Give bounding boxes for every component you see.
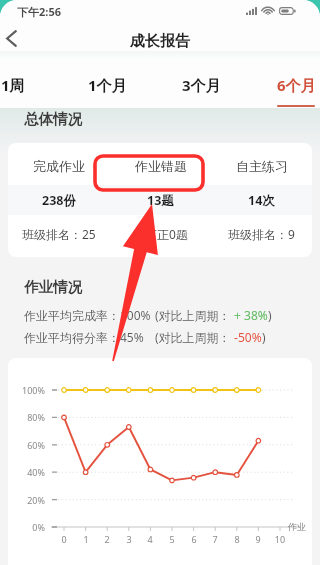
staticText: ) (262, 329, 266, 345)
button[interactable]: 6个月 (266, 75, 320, 105)
staticText: 完成作业 (33, 158, 85, 174)
staticText: (对比上周期： (155, 329, 231, 345)
button[interactable]: 3个月 (171, 75, 231, 105)
staticText: 7 (205, 533, 225, 545)
staticText: 班级排名：9 (228, 226, 295, 242)
staticText: 作业错题 (135, 158, 187, 174)
staticText: 作业平均完成率：100% (24, 307, 151, 323)
staticText: 80% (8, 411, 45, 423)
staticText: 2 (97, 533, 117, 545)
staticText: -50% (231, 329, 262, 345)
staticText: 0% (8, 521, 45, 533)
staticText: 作业 (288, 521, 306, 532)
staticText: 60% (8, 439, 45, 451)
staticText: 3个月 (182, 75, 221, 95)
staticText: 13题 (147, 192, 174, 209)
staticText: 班级排名：25 (22, 226, 96, 242)
staticText: 作业平均得分率：45% (24, 329, 144, 345)
staticText: 总体情况 (24, 110, 82, 128)
staticText: 自主练习 (236, 158, 288, 174)
staticText: 238份 (42, 192, 76, 209)
staticText: ) (268, 307, 272, 323)
staticText: 1 (76, 533, 96, 545)
staticText: 14次 (248, 192, 275, 209)
staticText: 0 (54, 533, 74, 545)
staticText: 9 (248, 533, 268, 545)
staticText: 已订正0题 (133, 226, 188, 242)
staticText: 100% (8, 384, 45, 396)
staticText: 1周 (1, 75, 25, 95)
staticText: + 38% (231, 307, 268, 323)
staticText: 作业情况 (24, 278, 82, 296)
staticText: 20% (8, 494, 45, 506)
staticText: 3 (119, 533, 139, 545)
staticText: 6 (184, 533, 204, 545)
staticText: 40% (8, 466, 45, 478)
button[interactable]: 返回 (0, 22, 32, 56)
staticText: (对比上周期： (155, 307, 231, 323)
button[interactable]: 1周 (0, 75, 43, 105)
staticText: 4 (140, 533, 160, 545)
staticText: 10 (270, 533, 290, 545)
staticText: 1个月 (88, 75, 127, 95)
staticText: 成长报告 (130, 32, 190, 51)
staticText: 5 (162, 533, 182, 545)
staticText: 8 (227, 533, 247, 545)
button[interactable]: 1个月 (77, 75, 137, 105)
staticText: 下午2:56 (17, 4, 61, 19)
staticText: 6个月 (277, 75, 316, 95)
